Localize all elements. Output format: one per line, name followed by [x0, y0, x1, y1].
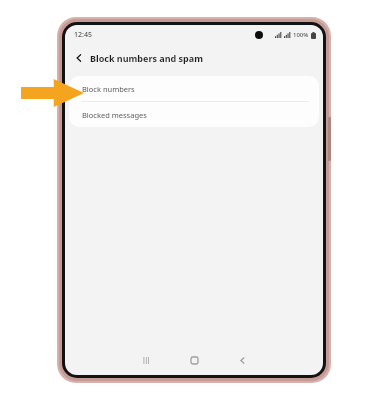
staticText: Block numbers: [82, 84, 135, 94]
button[interactable]: Navigate up: [70, 49, 88, 67]
staticText: 100%: [293, 31, 309, 39]
staticText: Block numbers and spam: [90, 52, 203, 64]
button[interactable]: Home: [170, 349, 218, 371]
button[interactable]: Block numbers: [69, 76, 319, 101]
button[interactable]: Blocked messages: [69, 102, 319, 127]
button[interactable]: Recents: [122, 349, 170, 371]
staticText: Blocked messages: [82, 110, 147, 120]
button[interactable]: Back: [218, 349, 266, 371]
staticText: 12:45: [74, 30, 92, 40]
